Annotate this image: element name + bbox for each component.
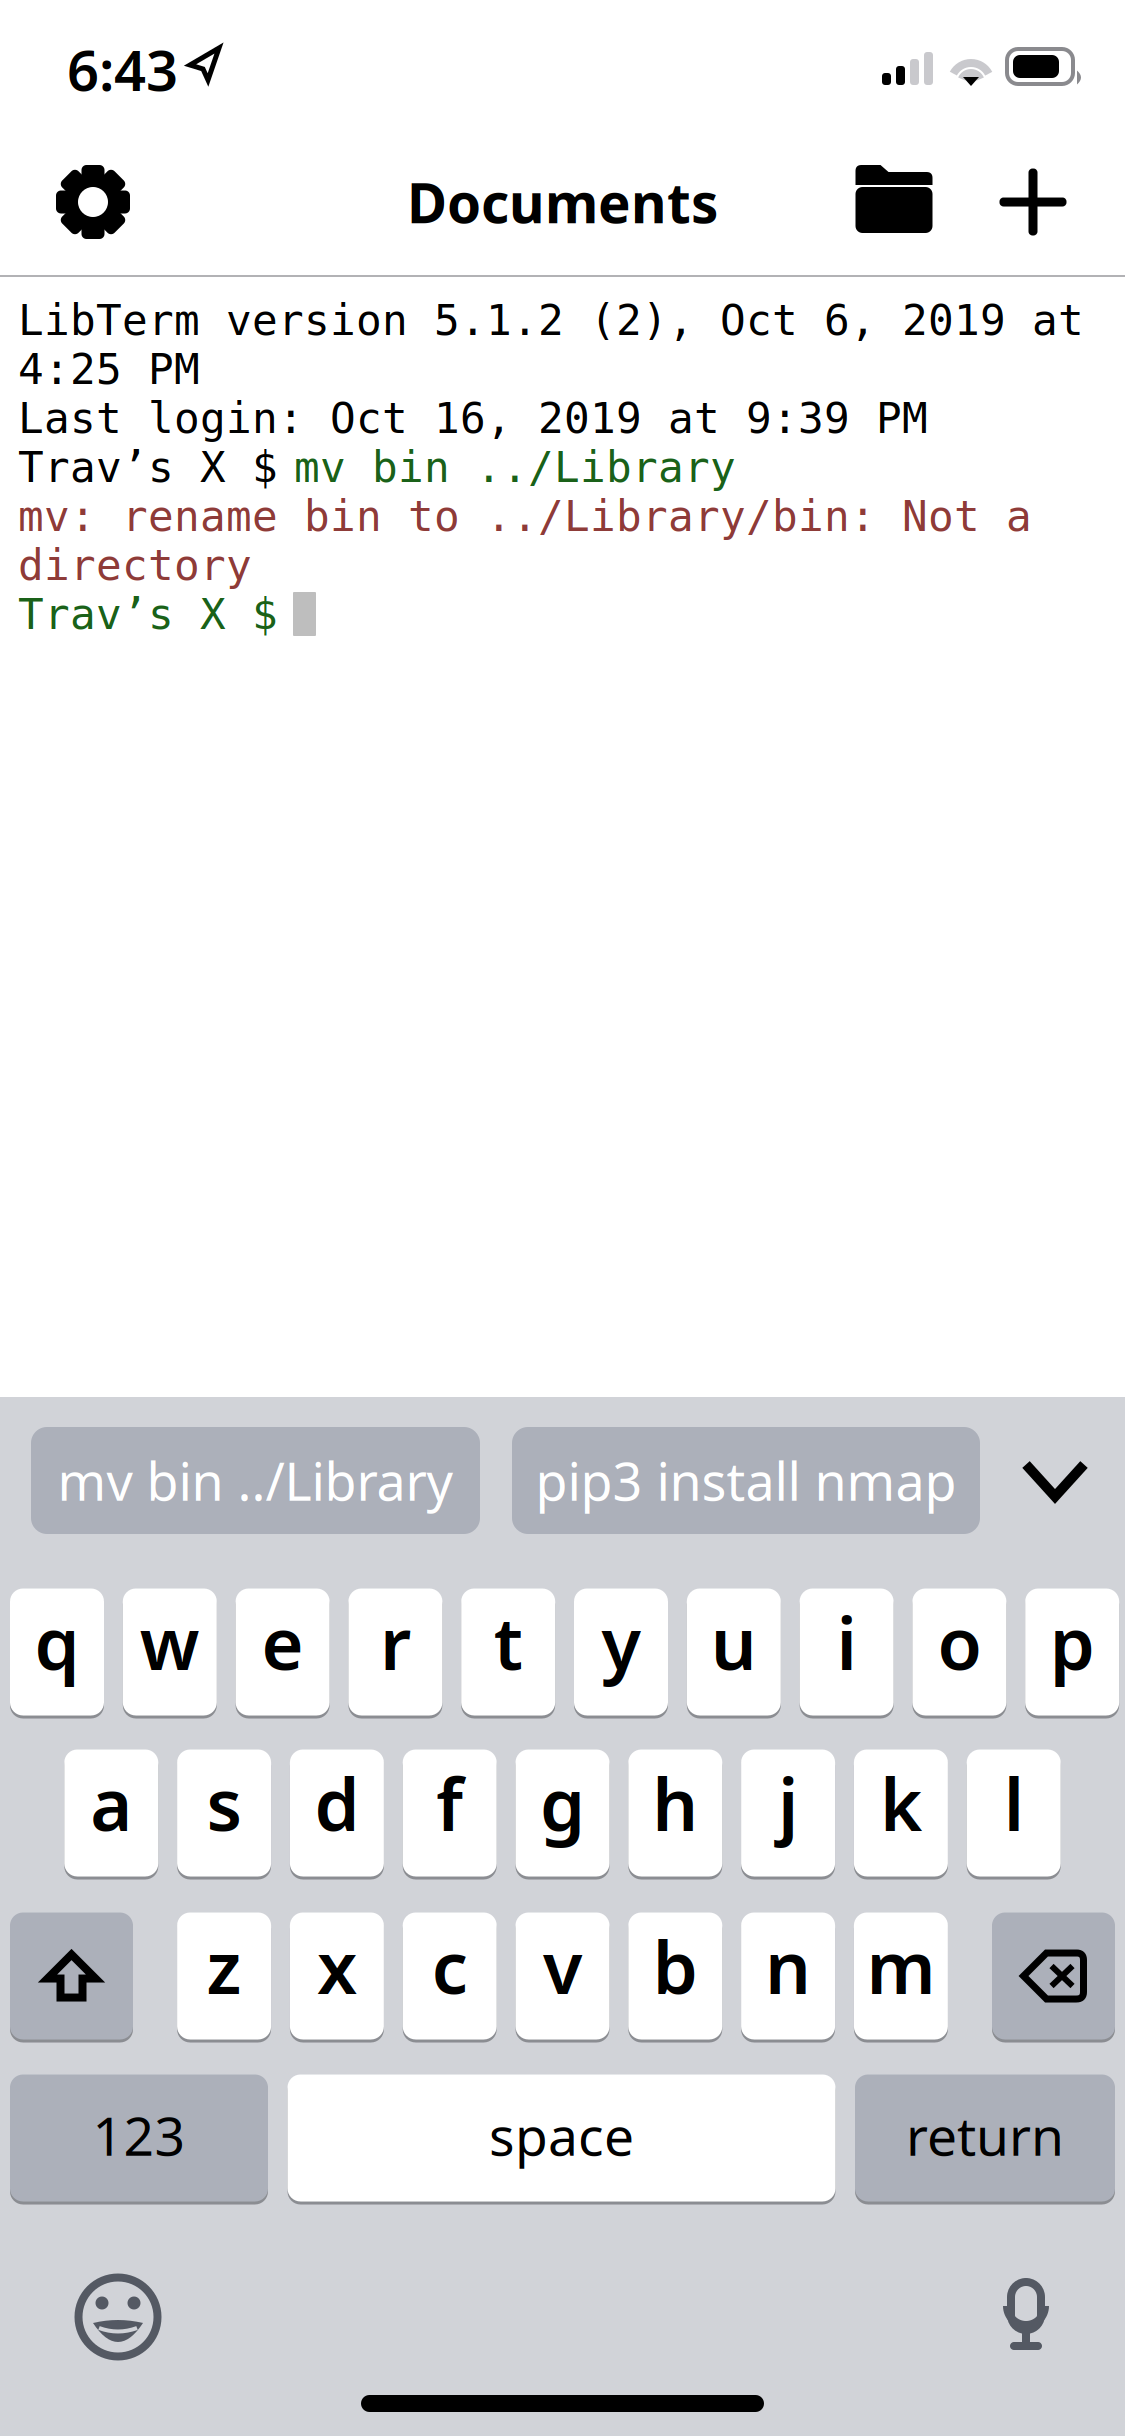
button[interactable]: 123	[10, 2073, 268, 2203]
staticText: u	[711, 1594, 757, 1690]
staticText: s	[207, 1755, 242, 1851]
staticText: g	[540, 1755, 585, 1851]
staticText: v	[543, 1918, 582, 2014]
staticText: q	[34, 1594, 79, 1690]
staticText: j	[778, 1755, 798, 1851]
button[interactable]: Shift	[10, 1911, 133, 2041]
button[interactable]: g	[515, 1748, 609, 1878]
button[interactable]: return	[855, 2073, 1115, 2203]
staticText: 4:25 PM	[18, 345, 200, 393]
staticText: LibTerm version 5.1.2 (2), Oct 6, 2019 a…	[18, 296, 1084, 344]
staticText: Last login: Oct 16, 2019 at 9:39 PM	[18, 394, 928, 442]
staticText: p	[1050, 1594, 1095, 1690]
button[interactable]: w	[123, 1587, 217, 1717]
button[interactable]: f	[403, 1748, 497, 1878]
button[interactable]: y	[574, 1587, 668, 1717]
button[interactable]: k	[854, 1748, 948, 1878]
staticText: m	[866, 1918, 935, 2014]
button[interactable]: mv bin ../Library	[31, 1427, 480, 1534]
staticText: k	[880, 1755, 922, 1851]
button[interactable]: j	[741, 1748, 835, 1878]
button[interactable]: c	[403, 1911, 497, 2041]
staticText: mv: rename bin to ../Library/bin: Not a	[18, 492, 1032, 540]
button[interactable]: q	[10, 1587, 104, 1717]
button[interactable]: a	[64, 1748, 158, 1878]
staticText: h	[652, 1755, 698, 1851]
staticText: 6:43	[67, 32, 178, 106]
button[interactable]: e	[236, 1587, 330, 1717]
button[interactable]: Hide keyboard	[1003, 1427, 1107, 1534]
button[interactable]: t	[461, 1587, 555, 1717]
staticText: r	[380, 1594, 411, 1690]
staticText: 123	[92, 2100, 185, 2170]
button[interactable]: p	[1025, 1587, 1119, 1717]
staticText: n	[765, 1918, 811, 2014]
staticText: f	[436, 1755, 463, 1851]
staticText: Trav’s X $	[18, 443, 304, 491]
staticText: mv bin ../Library	[294, 443, 736, 491]
button[interactable]: Settings	[35, 144, 151, 260]
staticText: c	[432, 1918, 468, 2014]
staticText: Documents	[407, 166, 718, 238]
staticText: directory	[18, 541, 252, 589]
staticText: Trav’s X $	[18, 590, 304, 638]
button[interactable]: u	[687, 1587, 781, 1717]
button[interactable]: space	[287, 2073, 835, 2203]
staticText: t	[494, 1594, 523, 1690]
staticText: e	[262, 1594, 304, 1690]
staticText: a	[90, 1755, 132, 1851]
staticText: space	[489, 2100, 634, 2170]
staticText: w	[140, 1594, 200, 1690]
staticText: mv bin ../Library	[57, 1446, 453, 1515]
staticText: x	[317, 1918, 357, 2014]
button[interactable]: Delete	[992, 1911, 1115, 2041]
button[interactable]: d	[290, 1748, 384, 1878]
staticText: return	[906, 2100, 1064, 2170]
button[interactable]: h	[628, 1748, 722, 1878]
button[interactable]: n	[741, 1911, 835, 2041]
button[interactable]: m	[854, 1911, 948, 2041]
staticText: d	[314, 1755, 359, 1851]
button[interactable]: Dictation	[971, 2264, 1081, 2374]
button[interactable]: i	[800, 1587, 894, 1717]
staticText: b	[653, 1918, 698, 2014]
staticText: l	[1004, 1755, 1024, 1851]
button[interactable]: l	[967, 1748, 1061, 1878]
button[interactable]: x	[290, 1911, 384, 2041]
staticText: o	[937, 1594, 981, 1690]
button[interactable]: pip3 install nmap	[512, 1427, 980, 1534]
button[interactable]: r	[348, 1587, 442, 1717]
staticText: z	[207, 1918, 242, 2014]
staticText: pip3 install nmap	[535, 1446, 956, 1515]
button[interactable]: z	[177, 1911, 271, 2041]
button[interactable]: b	[628, 1911, 722, 2041]
button[interactable]: New	[975, 144, 1091, 260]
button[interactable]: Emoji	[63, 2262, 173, 2372]
button[interactable]: Files	[836, 130, 952, 246]
staticText: y	[601, 1594, 640, 1690]
staticText: i	[837, 1594, 857, 1690]
button[interactable]: s	[177, 1748, 271, 1878]
button[interactable]: o	[912, 1587, 1006, 1717]
button[interactable]: v	[515, 1911, 609, 2041]
